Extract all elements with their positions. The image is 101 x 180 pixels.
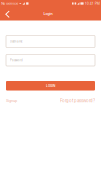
- staticText: Login: [43, 11, 52, 16]
- staticText: 10:41 PM: [85, 1, 100, 6]
- button[interactable]: Forgot password?: [60, 98, 95, 103]
- staticText: Password: [10, 59, 23, 62]
- staticText: Username: [10, 40, 22, 43]
- staticText: Forgot password?: [60, 98, 95, 103]
- button[interactable]: Signup: [6, 98, 17, 103]
- staticText: Signup: [6, 98, 17, 103]
- button[interactable]: Back: [0, 7, 15, 21]
- staticText: LOGIN: [46, 84, 55, 88]
- button[interactable]: LOGIN: [6, 81, 95, 90]
- staticText: No service: [1, 1, 18, 6]
